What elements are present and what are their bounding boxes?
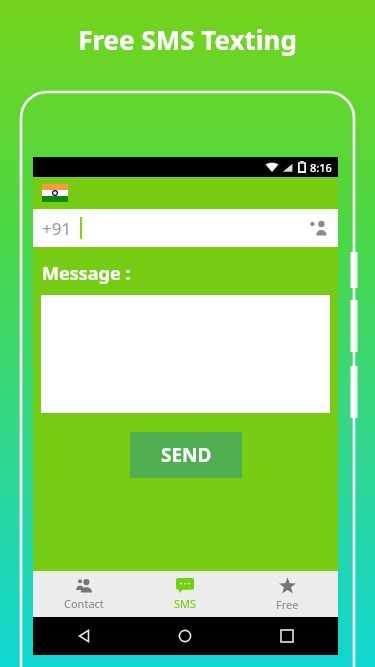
button[interactable]: +91 xyxy=(33,209,338,247)
button[interactable]: Contact xyxy=(33,571,134,617)
button[interactable]: SMS xyxy=(134,571,236,617)
staticText: +91 xyxy=(42,217,72,240)
staticText: SMS xyxy=(174,596,197,611)
staticText: SEND xyxy=(161,442,212,468)
staticText: Free SMS Texting xyxy=(78,22,297,57)
other: Country: India xyxy=(42,184,68,202)
staticText: Contact xyxy=(64,596,104,611)
staticText: Free xyxy=(276,597,299,612)
button[interactable]: Free xyxy=(236,571,338,617)
button[interactable]: SEND xyxy=(130,432,242,478)
button[interactable]: Country: India xyxy=(33,177,338,209)
button[interactable]: Home xyxy=(134,617,236,655)
staticText: 8:16 xyxy=(310,160,332,175)
button[interactable]: Back xyxy=(33,617,134,655)
staticText: Message : xyxy=(42,261,131,286)
button[interactable]: Recent apps xyxy=(236,617,338,655)
button[interactable]: Add contact xyxy=(300,209,338,247)
